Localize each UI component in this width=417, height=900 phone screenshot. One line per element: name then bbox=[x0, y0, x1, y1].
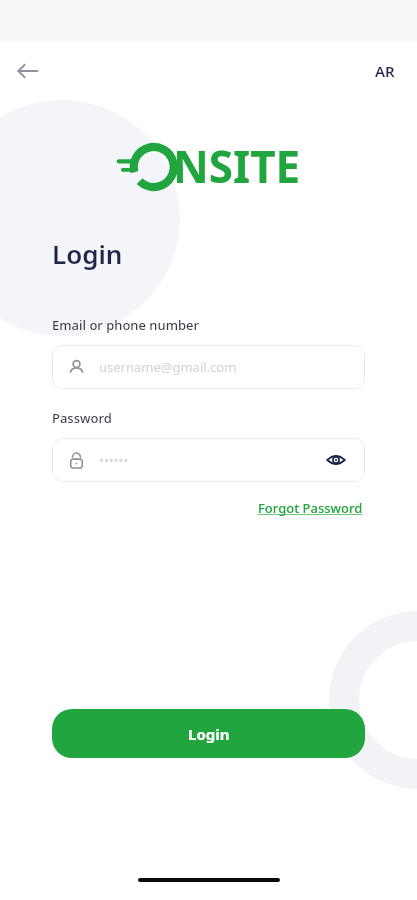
button[interactable]: Show password bbox=[319, 443, 353, 477]
staticText: Login bbox=[52, 236, 123, 271]
button[interactable]: Login bbox=[52, 709, 365, 758]
staticText: Email or phone number bbox=[52, 316, 199, 334]
staticText: AR bbox=[375, 61, 395, 81]
staticText: NSITE bbox=[173, 136, 301, 196]
button[interactable]: username@gmail.com bbox=[52, 345, 365, 389]
staticText: username@gmail.com bbox=[99, 358, 237, 376]
button[interactable]: Forgot Password bbox=[256, 496, 365, 520]
button[interactable]: •••••• bbox=[52, 438, 365, 482]
button[interactable]: AR bbox=[367, 55, 403, 87]
staticText: Forgot Password bbox=[258, 499, 363, 517]
staticText: Password bbox=[52, 409, 112, 427]
button[interactable]: Back bbox=[6, 49, 50, 93]
staticText: •••••• bbox=[99, 451, 129, 469]
staticText: Login bbox=[188, 724, 230, 744]
